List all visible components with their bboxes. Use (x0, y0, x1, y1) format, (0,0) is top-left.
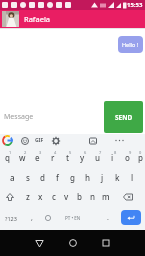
button[interactable]: Message (0, 100, 104, 134)
button[interactable]: GIF (35, 137, 44, 144)
button[interactable] (41, 210, 55, 226)
staticText: , (31, 213, 33, 223)
staticText: b (77, 191, 82, 202)
button[interactable]: g (65, 167, 80, 187)
staticText: 2 (24, 150, 27, 155)
button[interactable]: b (73, 187, 86, 206)
button[interactable]: u (90, 147, 105, 167)
button[interactable]: t (60, 147, 75, 167)
staticText: i (111, 152, 114, 163)
staticText: t (66, 152, 70, 163)
staticText: 4 (54, 150, 57, 155)
staticText: c (52, 191, 56, 202)
button[interactable]: q (0, 147, 15, 167)
button[interactable] (89, 230, 122, 256)
staticText: l (131, 172, 134, 183)
button[interactable] (21, 137, 29, 145)
staticText: w (19, 152, 26, 163)
staticText: ?123 (5, 215, 17, 222)
staticText: y (80, 152, 85, 163)
staticText: f (56, 172, 59, 183)
button[interactable]: s (20, 167, 35, 187)
button[interactable]: . (100, 210, 115, 226)
staticText: n (90, 191, 96, 202)
staticText: r (51, 152, 55, 163)
button[interactable]: k (110, 167, 125, 187)
staticText: q (5, 152, 10, 163)
button[interactable]: o (120, 147, 135, 167)
staticText: . (107, 213, 109, 223)
button[interactable] (3, 136, 12, 145)
staticText: h (85, 172, 91, 183)
button[interactable]: , (24, 210, 39, 226)
staticText: x (38, 191, 43, 202)
button[interactable]: Hello ! (118, 36, 143, 53)
staticText: 7 (99, 150, 102, 155)
button[interactable]: e (30, 147, 45, 167)
button[interactable] (115, 136, 124, 145)
staticText: Hello ! (122, 41, 139, 48)
staticText: p (138, 152, 143, 163)
button[interactable] (117, 187, 139, 206)
staticText: m (102, 191, 110, 202)
button[interactable]: c (47, 187, 60, 206)
button[interactable]: v (60, 187, 73, 206)
staticText: 5 (69, 150, 72, 155)
button[interactable]: n (86, 187, 99, 206)
button[interactable]: l (125, 167, 140, 187)
staticText: Message (4, 112, 34, 122)
staticText: 0 (139, 150, 142, 155)
button[interactable]: d (35, 167, 50, 187)
button[interactable] (89, 137, 97, 145)
staticText: d (40, 172, 45, 183)
staticText: e (35, 152, 40, 163)
staticText: PT • EN (65, 215, 81, 221)
button[interactable]: a (5, 167, 20, 187)
staticText: SEND (115, 113, 133, 122)
button[interactable] (0, 187, 20, 206)
button[interactable]: i (105, 147, 120, 167)
staticText: 1 (9, 150, 12, 155)
button[interactable] (52, 137, 60, 145)
button[interactable]: y (75, 147, 90, 167)
staticText: Rafaela (24, 14, 51, 24)
button[interactable]: SEND (104, 101, 143, 133)
button[interactable]: z (21, 187, 34, 206)
staticText: 9 (129, 150, 132, 155)
button[interactable]: m (99, 187, 112, 206)
staticText: 3 (39, 150, 42, 155)
staticText: o (125, 152, 130, 163)
button[interactable]: ?123 (0, 210, 22, 226)
staticText: v (64, 191, 69, 202)
staticText: 6 (84, 150, 87, 155)
staticText: a (10, 172, 15, 183)
button[interactable]: f (50, 167, 65, 187)
staticText: g (70, 172, 75, 183)
button[interactable]: j (95, 167, 110, 187)
button[interactable]: p (135, 147, 145, 167)
button[interactable] (56, 230, 89, 256)
staticText: s (26, 172, 30, 183)
button[interactable]: w (15, 147, 30, 167)
button[interactable]: PT • EN (55, 210, 91, 226)
staticText: 15:53 (127, 1, 143, 9)
button[interactable]: x (34, 187, 47, 206)
staticText: j (101, 172, 104, 183)
staticText: GIF (35, 137, 44, 144)
staticText: z (26, 191, 30, 202)
button[interactable]: r (45, 147, 60, 167)
button[interactable]: h (80, 167, 95, 187)
button[interactable] (121, 210, 141, 225)
button[interactable]: Rafaela (0, 10, 145, 28)
staticText: k (115, 172, 120, 183)
staticText: 8 (114, 150, 117, 155)
button[interactable] (23, 230, 56, 256)
staticText: u (95, 152, 101, 163)
